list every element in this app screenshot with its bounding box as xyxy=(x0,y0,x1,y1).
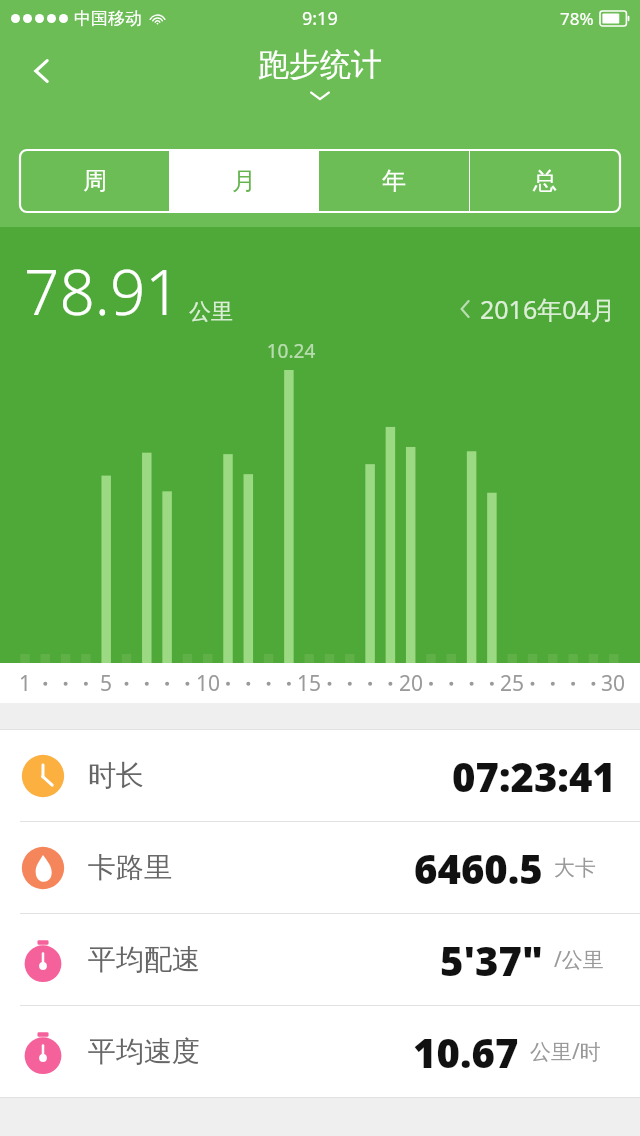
staticText: 1 xyxy=(9,669,41,698)
button[interactable]: 卡路里 xyxy=(0,822,640,913)
staticText: 总 xyxy=(533,166,557,196)
staticText: 07:23:41 xyxy=(452,749,616,803)
button[interactable]: 月 xyxy=(169,150,319,212)
staticText: 10 xyxy=(192,669,224,698)
staticText: 20 xyxy=(395,669,427,698)
staticText: 月 xyxy=(232,166,256,196)
staticText: 年 xyxy=(382,166,406,196)
staticText: 5'37" xyxy=(440,933,543,987)
staticText: /公里 xyxy=(554,945,616,974)
staticText: 大卡 xyxy=(554,855,616,881)
staticText: 卡路里 xyxy=(88,850,172,885)
staticText: 周 xyxy=(83,166,107,196)
staticText: 平均速度 xyxy=(88,1034,200,1069)
staticText: 10.67 xyxy=(413,1025,519,1079)
button[interactable]: 2016年04月 xyxy=(459,292,616,326)
staticText: 25 xyxy=(496,669,528,698)
staticText: 跑步统计 xyxy=(258,45,382,84)
staticText: 15 xyxy=(293,669,325,698)
staticText: 5 xyxy=(90,669,122,698)
button[interactable]: 年 xyxy=(319,150,469,212)
button[interactable]: 时长 xyxy=(0,730,640,821)
button[interactable]: 跑步统计 xyxy=(258,45,382,102)
button[interactable]: 周 xyxy=(20,150,169,212)
button[interactable]: 平均速度 xyxy=(0,1006,640,1097)
staticText: 78% xyxy=(560,7,594,30)
staticText: 平均配速 xyxy=(88,942,200,977)
staticText: 9:19 xyxy=(302,6,338,31)
staticText: 78.91 xyxy=(24,249,181,333)
staticText: 时长 xyxy=(88,758,144,793)
staticText: 6460.5 xyxy=(414,841,543,895)
button[interactable]: 平均配速 xyxy=(0,914,640,1005)
staticText: 30 xyxy=(597,669,629,698)
staticText: 公里/时 xyxy=(530,1037,616,1066)
staticText: 中国移动 xyxy=(74,8,142,29)
staticText: 公里 xyxy=(189,298,233,326)
button[interactable]: 总 xyxy=(470,150,620,212)
staticText: 2016年04月 xyxy=(480,292,616,326)
staticText: 10.24 xyxy=(259,338,323,364)
button[interactable]: Back xyxy=(14,43,70,99)
